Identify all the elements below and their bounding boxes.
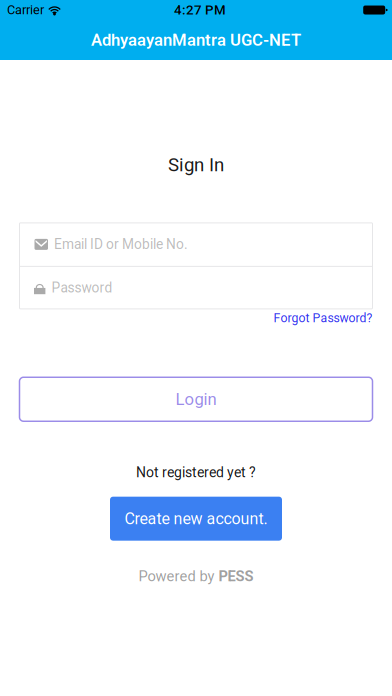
button[interactable]: Login xyxy=(19,377,372,421)
staticText: Login xyxy=(175,389,216,409)
button[interactable]: Create new account. xyxy=(110,497,282,541)
staticText: Powered by xyxy=(138,568,218,585)
staticText: Password xyxy=(51,280,112,296)
button[interactable]: Forgot Password? xyxy=(273,311,372,325)
staticText: Carrier xyxy=(7,3,44,17)
staticText: Forgot Password? xyxy=(273,311,372,325)
staticText: AdhyaayanMantra UGC-NET xyxy=(91,30,301,50)
staticText: Create new account. xyxy=(124,509,267,528)
staticText: Email ID or Mobile No. xyxy=(54,236,188,252)
staticText: Sign In xyxy=(168,154,224,176)
staticText: PESS xyxy=(218,568,253,585)
staticText: 4:27 PM xyxy=(174,2,226,18)
staticText: Not registered yet ? xyxy=(136,464,256,481)
